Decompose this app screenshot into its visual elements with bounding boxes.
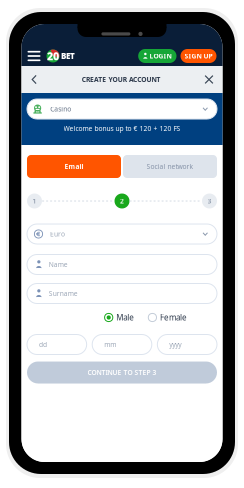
staticText: Social network [146,162,193,171]
button[interactable]: mm [92,334,152,354]
staticText: CREATE YOUR ACCOUNT [82,75,160,84]
staticText: CONTINUE TO STEP 3 [87,368,156,377]
staticText: yyyy [169,340,181,349]
staticText: Female [160,312,187,323]
staticText: 20 [47,49,59,63]
staticText: Euro [50,230,65,238]
staticText: mm [104,340,116,349]
staticText: 3 [207,197,211,205]
staticText: Name [49,260,68,269]
button[interactable]: yyyy [157,334,217,354]
button[interactable]: Name [27,254,217,274]
staticText: Email [64,162,83,171]
staticText: SIGN UP [184,52,212,60]
button[interactable]: Social network [123,155,217,178]
staticText: LOGIN [149,52,171,60]
button[interactable]: Female [148,312,187,323]
staticText: Surname [49,289,78,298]
staticText: BET [61,51,75,61]
button[interactable]: Male [105,312,134,323]
button[interactable]: Back [25,68,43,91]
button[interactable]: Close [199,69,218,90]
button[interactable]: Email [27,155,121,178]
button[interactable]: LOGIN [138,49,176,63]
staticText: dd [39,340,47,349]
staticText: Casino [50,105,71,113]
staticText: 1 [32,197,36,205]
button[interactable]: Menu [27,49,44,63]
button[interactable]: dd [27,334,87,354]
button[interactable]: CONTINUE TO STEP 3 [27,361,217,383]
staticText: Welcome bonus up to € 120 + 120 FS [63,124,180,133]
button[interactable]: Euro [27,224,217,244]
staticText: Male [116,312,134,323]
button[interactable]: SIGN UP [180,49,216,63]
button[interactable]: Surname [27,283,217,303]
button[interactable]: Casino [27,99,217,119]
staticText: 2 [120,197,124,205]
